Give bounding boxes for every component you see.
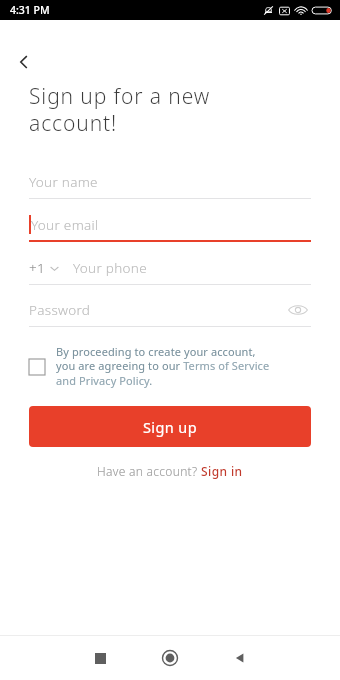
staticText: By proceeding to create your account, yo…	[56, 344, 270, 389]
button[interactable]: Show password	[285, 297, 311, 323]
staticText: Sign in	[201, 463, 243, 479]
staticText: Sign up for a new account!	[29, 82, 211, 137]
button[interactable]: Your name	[29, 166, 311, 199]
button[interactable]: +1	[29, 252, 311, 285]
staticText: Password	[29, 301, 91, 319]
button[interactable]: Back	[221, 639, 259, 677]
staticText: Your phone	[73, 259, 147, 277]
other: Agree to terms	[29, 359, 45, 375]
staticText: Your email	[31, 216, 99, 234]
button[interactable]: Home	[151, 639, 189, 677]
staticText: 4:31 PM	[10, 3, 50, 17]
button[interactable]: Recents	[81, 639, 119, 677]
button[interactable]: Back	[4, 42, 44, 82]
button[interactable]: Agree to terms	[29, 344, 311, 389]
staticText: Your name	[29, 173, 98, 191]
button[interactable]: Sign up	[29, 406, 311, 447]
button[interactable]: Your email	[29, 208, 311, 242]
staticText: +1	[29, 259, 46, 277]
staticText: Sign up	[143, 417, 198, 437]
button[interactable]: Password	[29, 294, 311, 327]
button[interactable]: Have an account?	[97, 463, 243, 479]
staticText: Have an account?	[97, 463, 201, 479]
